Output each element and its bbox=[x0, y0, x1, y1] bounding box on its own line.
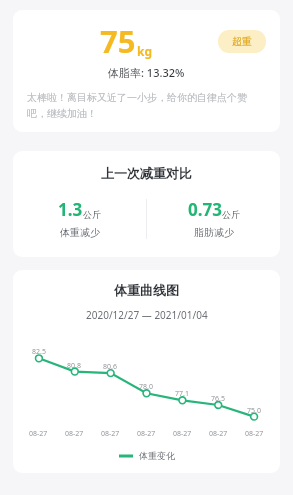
staticText: kg bbox=[137, 43, 153, 59]
staticText: 80.6 bbox=[103, 362, 117, 372]
staticText: 体脂率: 13.32% bbox=[108, 65, 185, 80]
staticText: 公斤 bbox=[222, 209, 240, 220]
staticText: 08-27 bbox=[101, 429, 120, 439]
staticText: 体重曲线图 bbox=[114, 282, 179, 298]
staticText: 08-27 bbox=[137, 429, 156, 439]
staticText: 08-27 bbox=[65, 429, 84, 439]
button[interactable]: 0.73 bbox=[147, 198, 280, 239]
staticText: 体重减少 bbox=[60, 226, 100, 239]
staticText: 08-27 bbox=[173, 429, 192, 439]
button[interactable]: 超重 bbox=[218, 30, 266, 53]
staticText: 超重 bbox=[232, 35, 252, 48]
staticText: 体重变化 bbox=[139, 450, 175, 461]
staticText: 0.73 bbox=[188, 198, 222, 221]
staticText: 76.5 bbox=[211, 394, 225, 404]
staticText: 太棒啦！离目标又近了一小步，给你的自律点个赞吧，继续加油！ bbox=[27, 91, 266, 120]
staticText: 82.5 bbox=[32, 347, 46, 357]
staticText: 2020/12/27 — 2021/01/04 bbox=[86, 308, 208, 322]
button[interactable]: 75 bbox=[13, 10, 280, 132]
staticText: 80.8 bbox=[67, 361, 81, 371]
staticText: 1.3 bbox=[58, 198, 83, 221]
button[interactable]: 体重曲线图 bbox=[13, 270, 280, 473]
button[interactable]: 1.3 bbox=[13, 198, 146, 239]
staticText: 77.1 bbox=[175, 389, 189, 399]
staticText: 08-27 bbox=[29, 429, 48, 439]
staticText: 08-27 bbox=[245, 429, 264, 439]
staticText: 脂肪减少 bbox=[194, 226, 234, 239]
staticText: 公斤 bbox=[83, 209, 101, 220]
staticText: 上一次减重对比 bbox=[101, 165, 192, 181]
staticText: 78.0 bbox=[139, 382, 153, 392]
staticText: 08-27 bbox=[209, 429, 228, 439]
button[interactable]: 上一次减重对比 bbox=[13, 151, 280, 257]
staticText: 75 bbox=[100, 20, 136, 62]
staticText: 75.0 bbox=[247, 406, 261, 416]
button[interactable]: 体重变化 bbox=[13, 450, 280, 461]
